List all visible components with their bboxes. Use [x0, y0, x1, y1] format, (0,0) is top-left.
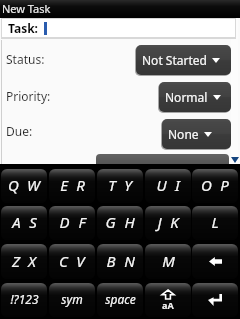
button[interactable]: sym — [49, 283, 95, 317]
button[interactable]: Normal — [159, 82, 231, 112]
button[interactable]: B — [97, 244, 143, 279]
staticText: aA — [162, 299, 174, 311]
staticText: O — [201, 175, 212, 195]
button[interactable]: M — [145, 244, 191, 279]
staticText: H — [124, 212, 135, 232]
button[interactable]: Enter — [192, 283, 238, 317]
staticText: E — [60, 175, 68, 195]
staticText: N — [124, 251, 135, 271]
staticText: M — [162, 251, 175, 271]
staticText: Normal — [165, 89, 208, 105]
staticText: R — [76, 175, 85, 195]
staticText: I — [175, 175, 180, 195]
button[interactable]: E — [49, 169, 95, 203]
staticText: G — [105, 212, 116, 232]
button[interactable]: A — [1, 206, 47, 240]
staticText: None — [168, 126, 199, 142]
staticText: F — [78, 212, 86, 232]
button[interactable]: O — [192, 169, 238, 203]
staticText: space — [105, 291, 136, 307]
button[interactable]: J — [145, 206, 191, 240]
staticText: Q — [8, 175, 19, 195]
button[interactable]: C — [49, 244, 95, 279]
button[interactable]: T — [97, 169, 143, 203]
staticText: !?123 — [10, 291, 39, 307]
staticText: sym — [61, 291, 83, 307]
staticText: U — [156, 175, 167, 195]
staticText: T — [108, 175, 116, 195]
staticText: Z — [12, 251, 20, 271]
button[interactable]: Shift — [145, 283, 191, 317]
staticText: X — [28, 251, 36, 271]
staticText: Y — [124, 175, 132, 195]
button[interactable]: L — [192, 206, 238, 240]
button[interactable]: G — [97, 206, 143, 240]
staticText: New Task — [2, 1, 51, 16]
staticText: Priority: — [6, 88, 51, 104]
button[interactable]: !?123 — [1, 283, 47, 317]
staticText: W — [27, 175, 40, 195]
other: Scroll down — [231, 157, 239, 163]
staticText: P — [220, 175, 229, 195]
staticText: S — [29, 212, 37, 232]
button[interactable]: Not Started — [136, 45, 231, 75]
button[interactable]: Z — [1, 244, 47, 279]
button[interactable]: None — [162, 119, 231, 149]
button[interactable]: U — [145, 169, 191, 203]
staticText: J — [157, 212, 162, 232]
staticText: L — [211, 212, 219, 232]
staticText: D — [59, 212, 70, 232]
staticText: Status: — [6, 51, 45, 67]
button[interactable] — [96, 154, 229, 180]
staticText: Task: — [8, 20, 38, 36]
staticText: Not Started — [142, 52, 207, 68]
staticText: V — [76, 251, 85, 271]
staticText: A — [12, 212, 21, 232]
staticText: B — [106, 251, 116, 271]
staticText: K — [170, 212, 179, 232]
button[interactable]: D — [49, 206, 95, 240]
staticText: C — [59, 251, 68, 271]
staticText: Due: — [6, 123, 33, 139]
button[interactable]: space — [97, 283, 143, 317]
button[interactable]: Q — [1, 169, 47, 203]
button[interactable]: Task: — [2, 19, 235, 37]
button[interactable]: Backspace — [192, 244, 238, 279]
